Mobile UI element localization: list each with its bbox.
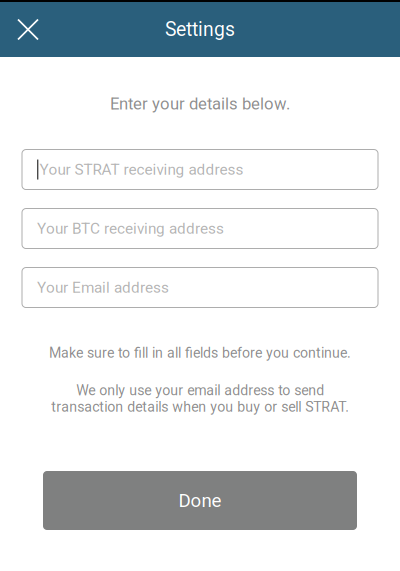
button[interactable]: Your BTC receiving address [22,208,378,248]
staticText: We only use your email address to send t… [51,382,349,415]
staticText: Make sure to fill in all fields before y… [49,344,351,361]
button[interactable]: Your STRAT receiving address [22,149,378,189]
button[interactable]: Done [43,471,357,530]
staticText: Your STRAT receiving address [39,160,243,178]
staticText: Done [178,490,221,511]
staticText: Your BTC receiving address [37,219,224,237]
staticText: Your Email address [37,278,169,296]
staticText: Enter your details below. [110,94,290,113]
staticText: Settings [165,18,235,41]
button[interactable]: Your Email address [22,267,378,307]
button[interactable]: Close [0,2,56,56]
